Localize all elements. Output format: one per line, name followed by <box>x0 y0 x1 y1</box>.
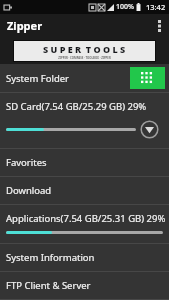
button[interactable]: S U P E R T O O L S <box>14 41 155 61</box>
button[interactable]: Applications(7.54 GB/25.31 GB) 29% <box>0 205 169 243</box>
staticText: 13:42 <box>146 2 166 12</box>
button[interactable]: Apps grid <box>130 67 165 89</box>
button[interactable]: More options <box>149 14 169 37</box>
button[interactable]: System Information <box>0 244 169 271</box>
button[interactable]: SD Card(7.54 GB/25.29 GB) 29% <box>0 93 169 148</box>
staticText: FTP Client & Server <box>6 279 91 292</box>
staticText: System Information <box>6 251 95 264</box>
button[interactable]: Download <box>0 177 169 204</box>
staticText: Zipper <box>7 18 43 33</box>
staticText: SD Card(7.54 GB/25.29 GB) 29% <box>6 100 147 113</box>
staticText: S U P E R T O O L S <box>43 43 126 55</box>
button[interactable]: System Folder <box>0 64 169 92</box>
button[interactable]: Expand <box>139 119 160 140</box>
staticText: 100% <box>116 2 134 12</box>
staticText: Download <box>6 184 52 197</box>
button[interactable]: FTP Client & Server <box>0 272 169 299</box>
staticText: Applications(7.54 GB/25.31 GB) 29% <box>6 212 166 225</box>
staticText: System Folder <box>6 72 70 85</box>
staticText: Favorites <box>6 156 47 169</box>
staticText: ZIPPER · COMPASS · TOOLBOX · ZIPPER <box>58 56 111 60</box>
button[interactable]: Favorites <box>0 149 169 176</box>
